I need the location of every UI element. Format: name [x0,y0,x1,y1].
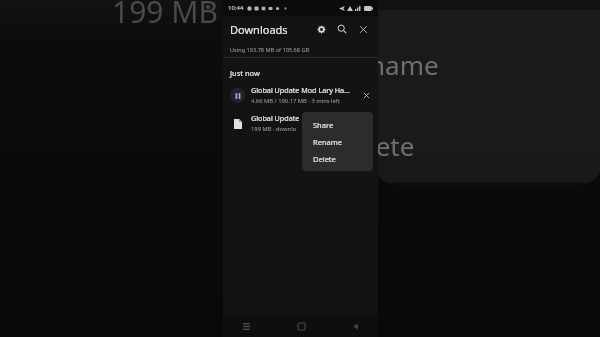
button[interactable]: Home [292,317,310,335]
button[interactable]: Global Update [223,109,378,137]
staticText: Just now [230,68,260,78]
staticText: Using 193.78 MB of 105.68 GB [230,46,310,54]
button[interactable]: Settings [312,20,330,38]
staticText: 10:44 [228,4,244,12]
button[interactable]: Search [333,20,351,38]
staticText: Global Update [251,113,300,123]
staticText: name [369,47,439,82]
staticText: Rename [313,137,342,147]
button[interactable]: Close [354,20,372,38]
button[interactable]: Rename [302,133,373,150]
button[interactable]: Global Update Mod Lary Ha... [223,81,378,109]
staticText: 199 MB [112,0,218,32]
staticText: 4.66 MB / 190.17 MB · 3 mins left [251,97,340,105]
staticText: lete [369,128,415,163]
button[interactable]: Cancel download [359,88,373,102]
staticText: Downloads [230,22,288,37]
button[interactable]: Delete [302,150,373,167]
button[interactable]: Back [346,317,364,335]
staticText: Share [313,120,334,130]
button[interactable]: Share [302,116,373,133]
staticText: 199 MB · downlo [251,125,297,133]
button[interactable]: Recent apps [237,317,255,335]
staticText: Delete [313,154,336,164]
staticText: Global Update Mod Lary Ha... [251,85,350,95]
